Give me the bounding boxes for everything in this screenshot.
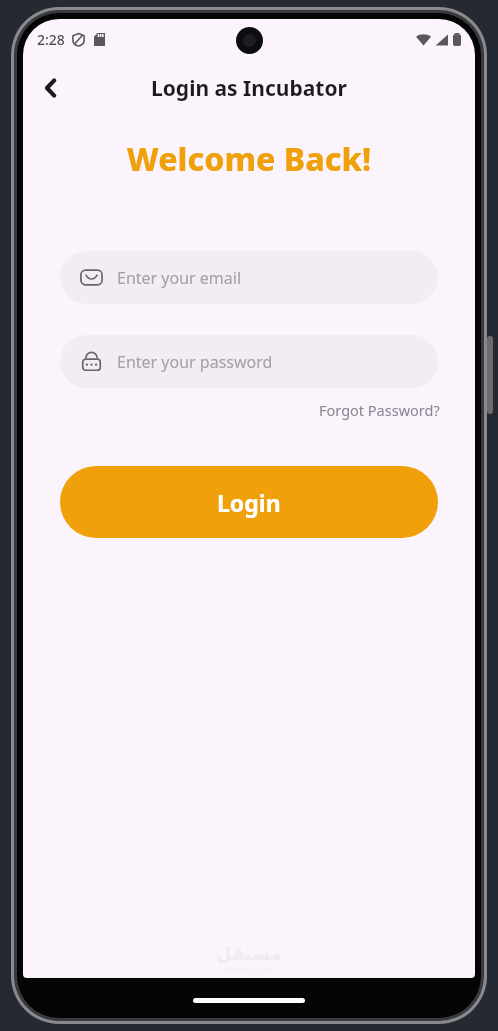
staticText: 2:28 bbox=[37, 30, 65, 49]
staticText: Login bbox=[217, 487, 281, 518]
staticText: Enter your email bbox=[117, 267, 242, 289]
staticText: مستقل bbox=[216, 943, 282, 964]
button[interactable]: Login bbox=[60, 466, 438, 538]
button[interactable]: Enter your email bbox=[60, 251, 438, 304]
staticText: Enter your password bbox=[117, 351, 273, 373]
staticText: Login as Incubator bbox=[151, 74, 347, 103]
button[interactable]: Enter your password bbox=[60, 335, 438, 388]
staticText: Forgot Password? bbox=[319, 400, 440, 420]
button[interactable]: Forgot Password? bbox=[315, 396, 444, 424]
button[interactable]: Back bbox=[29, 66, 73, 110]
staticText: Welcome Back! bbox=[23, 137, 475, 181]
